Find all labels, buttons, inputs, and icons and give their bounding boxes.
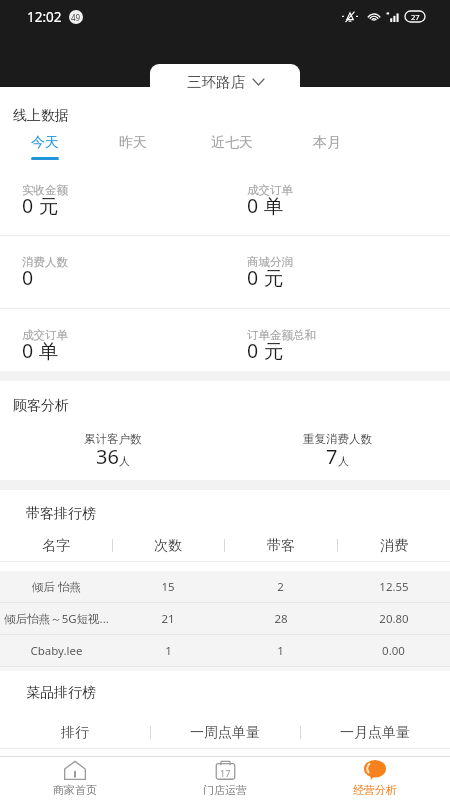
button[interactable]: 三环路店 <box>150 64 300 97</box>
staticText: 17 <box>220 767 231 779</box>
staticText: 实收金额 <box>22 183 68 197</box>
staticText: 门店运营 <box>203 783 247 797</box>
staticText: 近七天 <box>211 134 253 152</box>
staticText: 元 <box>264 339 284 364</box>
staticText: 元 <box>39 194 59 219</box>
button[interactable]: 昨天 <box>102 132 164 164</box>
staticText: 28 <box>274 611 288 627</box>
staticText: 消费人数 <box>22 255 68 269</box>
staticText: 0 <box>22 337 34 364</box>
staticText: 经营分析 <box>353 783 397 797</box>
staticText: 21 <box>161 611 175 627</box>
staticText: 元 <box>264 266 284 291</box>
staticText: 商城分润 <box>247 255 293 269</box>
button[interactable]: 近七天 <box>201 132 263 164</box>
staticText: 一周点单量 <box>190 724 260 742</box>
staticText: 线上数据 <box>13 107 69 125</box>
staticText: 消费 <box>380 537 408 555</box>
staticText: 顾客分析 <box>13 397 69 415</box>
button[interactable]: 倾后怡燕～5G短视... <box>0 603 450 634</box>
button[interactable]: 商家首页 <box>0 757 150 800</box>
staticText: 人 <box>338 454 349 468</box>
staticText: 27 <box>411 12 420 22</box>
staticText: 昨天 <box>119 134 147 152</box>
staticText: 累计客户数 <box>84 432 142 446</box>
staticText: 0 <box>247 337 259 364</box>
staticText: 菜品排行榜 <box>26 684 96 702</box>
button[interactable]: Cbaby.lee <box>0 635 450 666</box>
staticText: 0 <box>247 264 259 291</box>
button[interactable]: 本月 <box>296 132 358 164</box>
staticText: 三环路店 <box>187 73 245 91</box>
staticText: 成交订单 <box>22 328 68 342</box>
staticText: 单 <box>39 339 59 364</box>
button[interactable]: 今天 <box>14 132 76 164</box>
staticText: 0.00 <box>382 643 405 659</box>
staticText: 7 <box>326 443 338 470</box>
staticText: Cbaby.lee <box>30 643 83 659</box>
staticText: 2 <box>277 579 284 595</box>
staticText: 本月 <box>313 134 341 152</box>
staticText: 一月点单量 <box>340 724 410 742</box>
staticText: 倾后 怡燕 <box>32 579 81 595</box>
staticText: 0 <box>247 192 259 219</box>
staticText: 重复消费人数 <box>303 432 372 446</box>
staticText: 成交订单 <box>247 183 293 197</box>
button[interactable]: 17 <box>150 757 300 800</box>
staticText: 0 <box>22 192 34 219</box>
staticText: 49 <box>71 12 81 23</box>
staticText: 次数 <box>154 537 182 555</box>
staticText: 1 <box>277 643 284 659</box>
staticText: 带客排行榜 <box>26 505 96 523</box>
staticText: 带客 <box>267 537 295 555</box>
button[interactable]: 倾后 怡燕 <box>0 571 450 602</box>
staticText: 12:02 <box>27 8 62 26</box>
staticText: 15 <box>161 579 175 595</box>
staticText: 订单金额总和 <box>247 328 316 342</box>
staticText: 今天 <box>31 134 59 152</box>
staticText: 0 <box>22 264 34 291</box>
staticText: 人 <box>119 454 130 468</box>
button[interactable]: 经营分析 <box>300 757 450 800</box>
staticText: 12.55 <box>379 579 409 595</box>
staticText: 名字 <box>42 537 70 555</box>
staticText: 单 <box>264 194 284 219</box>
staticText: 36 <box>96 443 119 470</box>
staticText: 商家首页 <box>53 783 97 797</box>
staticText: 排行 <box>61 724 89 742</box>
staticText: 20.80 <box>379 611 409 627</box>
staticText: 倾后怡燕～5G短视... <box>4 611 109 627</box>
staticText: 1 <box>165 643 172 659</box>
